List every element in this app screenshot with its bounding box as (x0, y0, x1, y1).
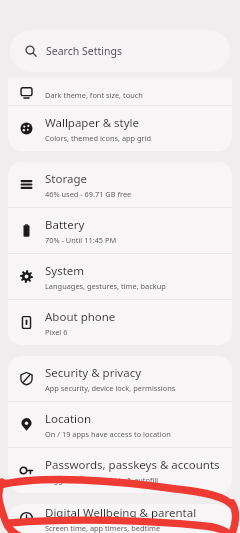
button[interactable]: Location (8, 402, 232, 447)
button[interactable]: Display (8, 78, 232, 105)
button[interactable]: Wallpaper and style (8, 106, 232, 151)
button[interactable]: Storage (8, 162, 232, 207)
staticText: Location (45, 411, 92, 427)
other: Display (20, 86, 33, 99)
staticText: Wallpaper & style (45, 115, 140, 131)
staticText: Colors, themed icons, app grid (45, 133, 152, 143)
button[interactable]: System (8, 254, 232, 299)
staticText: Digital Wellbeing & parental (45, 505, 197, 521)
button[interactable]: Battery (8, 208, 232, 253)
staticText: App security, device lock, permissions (45, 383, 176, 393)
button[interactable]: Security and privacy (8, 356, 232, 401)
staticText: Passwords, passkeys & accounts (45, 457, 220, 473)
staticText: Search Settings (46, 44, 122, 58)
staticText: 70% - Until 11:45 PM (45, 235, 117, 245)
staticText: Battery (45, 217, 85, 233)
staticText: Security & privacy (45, 365, 142, 381)
button[interactable]: About phone (8, 300, 232, 345)
staticText: Storage (45, 171, 87, 187)
other: Security and privacy (20, 372, 33, 385)
staticText: Suggestions for sign-in & autofill (45, 475, 159, 485)
other: Battery (20, 224, 33, 237)
staticText: On / 19 apps have access to location (45, 429, 171, 439)
button[interactable]: Digital Wellbeing and parental controls (8, 504, 232, 533)
other: Location (20, 418, 33, 431)
staticText: Languages, gestures, time, backup (45, 281, 166, 291)
other: Passwords, passkeys and accounts (20, 464, 33, 477)
other: Wallpaper and style (20, 122, 33, 135)
staticText: Pixel 6 (45, 327, 68, 337)
staticText: Dark theme, font size, touch (45, 90, 143, 100)
staticText: 46% used - 69.71 GB free (45, 189, 132, 199)
other: Storage (20, 178, 33, 191)
other: About phone (20, 316, 33, 329)
other: Digital Wellbeing and parental controls (20, 512, 33, 525)
staticText: System (45, 263, 85, 279)
staticText: Screen time, app timers, bedtime (45, 523, 161, 533)
staticText: About phone (45, 309, 116, 325)
button[interactable]: Search Settings (10, 30, 230, 72)
other: System (20, 270, 33, 283)
button[interactable]: Passwords, passkeys and accounts (8, 448, 232, 493)
